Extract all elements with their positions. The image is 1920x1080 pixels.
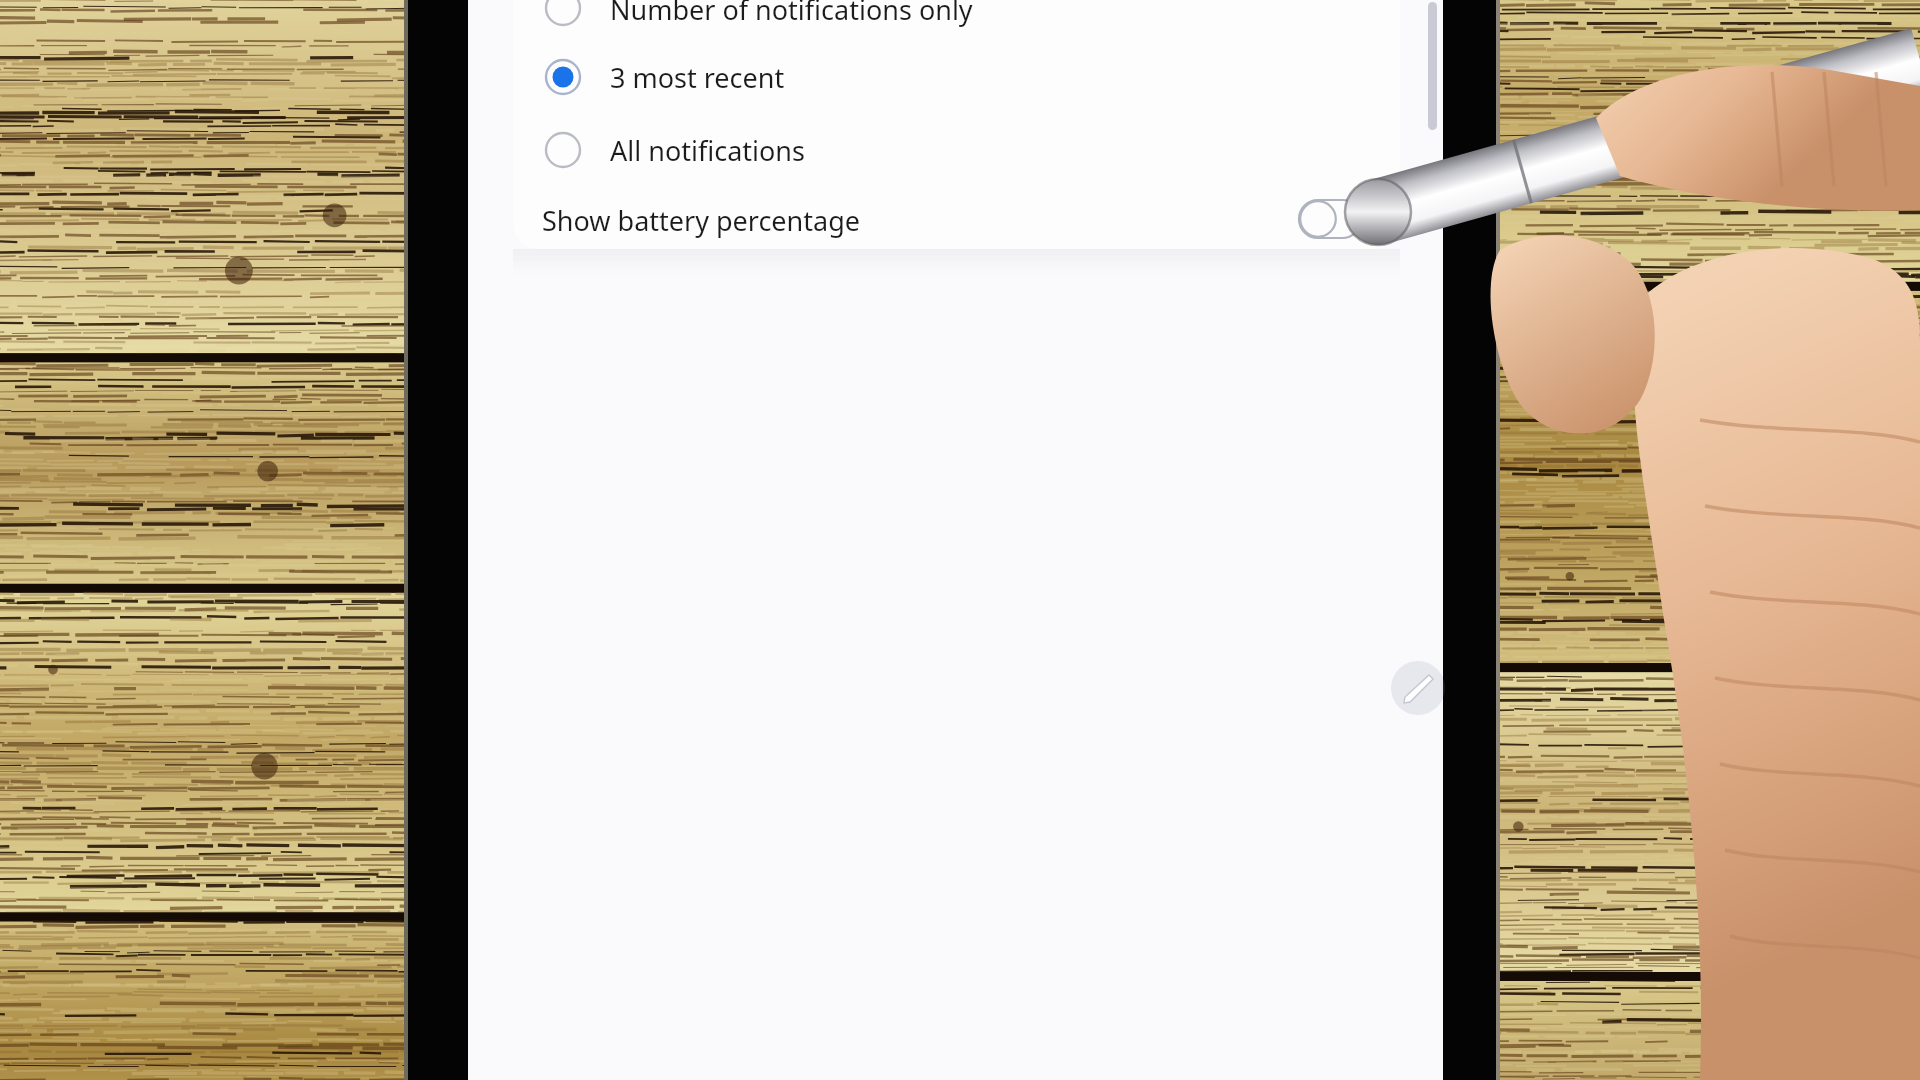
button[interactable]: Edit [1391,661,1445,715]
staticText: 3 most recent [610,59,785,96]
button[interactable]: Number of notifications only [513,0,1400,40]
button[interactable]: Show battery percentage [513,186,1400,249]
staticText: Number of notifications only [610,0,973,28]
button[interactable]: All notifications [513,116,1400,184]
button[interactable]: 3 most recent [513,43,1400,111]
staticText: Show battery percentage [542,202,861,239]
staticText: All notifications [610,132,805,169]
